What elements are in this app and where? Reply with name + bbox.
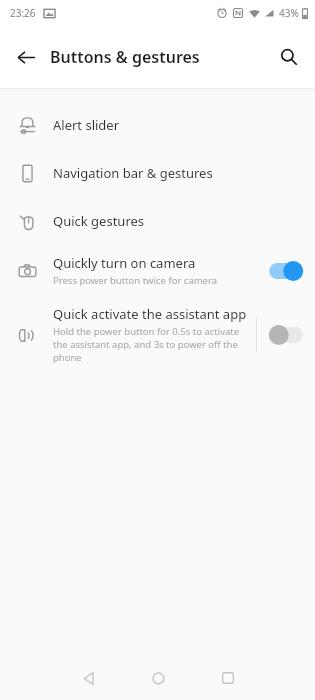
staticText: Quick activate the assistant app <box>53 305 247 323</box>
button[interactable]: Quick activate the assistant app <box>0 296 315 373</box>
button[interactable]: Toggle off <box>267 322 305 348</box>
staticText: 23:26 <box>10 6 36 20</box>
button[interactable]: Navigation bar & gestures <box>0 149 315 197</box>
button[interactable]: Quick gestures <box>0 197 315 245</box>
staticText: Navigation bar & gestures <box>53 164 213 182</box>
staticText: Alert slider <box>53 116 120 134</box>
staticText: Quick gestures <box>53 212 145 230</box>
staticText: Buttons & gestures <box>50 46 200 68</box>
staticText: 43% <box>279 6 299 20</box>
button[interactable]: Back <box>64 656 112 700</box>
button[interactable]: Home <box>134 656 182 700</box>
button[interactable]: Quickly turn on camera <box>0 245 315 296</box>
staticText: Press power button twice for camera <box>53 274 218 287</box>
button[interactable]: Back <box>6 37 46 77</box>
button[interactable]: Recents <box>204 656 252 700</box>
button[interactable]: Alert slider <box>0 101 315 149</box>
staticText: Hold the power button for 0.5s to activa… <box>53 325 256 364</box>
button[interactable]: Search <box>269 37 309 77</box>
staticText: Quickly turn on camera <box>53 254 196 272</box>
button[interactable]: Toggle on <box>267 258 305 284</box>
